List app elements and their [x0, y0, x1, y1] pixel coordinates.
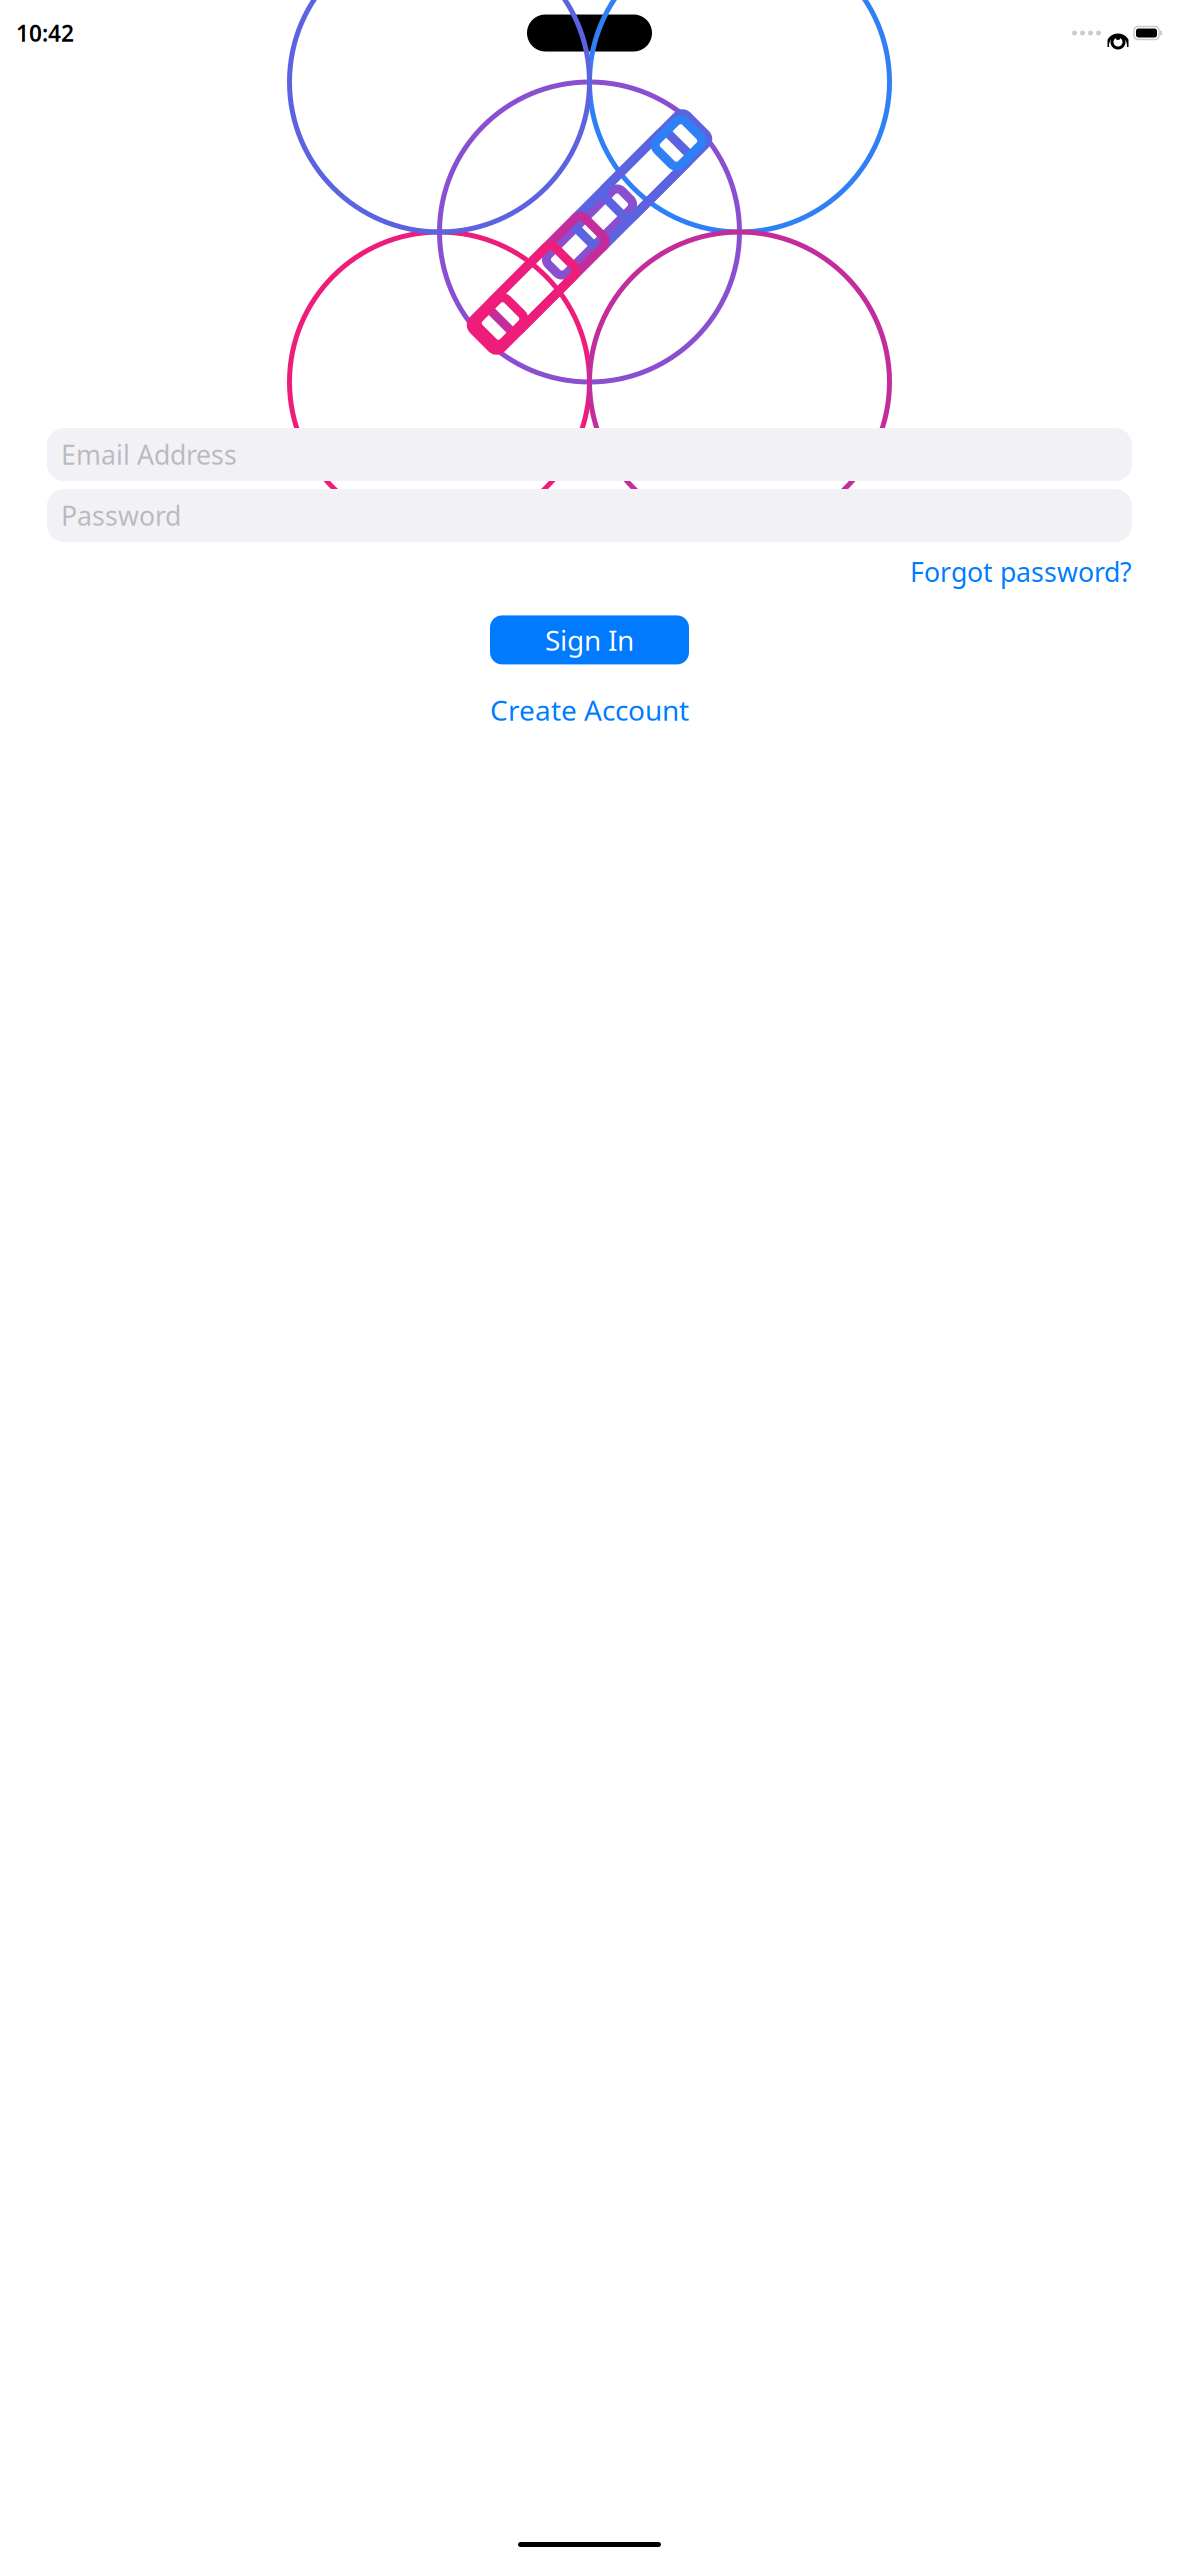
staticText: Email Address — [61, 437, 237, 472]
button[interactable]: Sign In — [490, 615, 689, 664]
button[interactable]: Create Account — [490, 691, 689, 729]
staticText: 10:42 — [16, 18, 74, 48]
staticText: Create Account — [490, 691, 689, 729]
staticText: Forgot password? — [910, 554, 1132, 589]
button[interactable]: Email Address — [47, 428, 1132, 481]
button[interactable]: Password — [47, 489, 1132, 542]
button[interactable]: Forgot password? — [910, 554, 1132, 589]
staticText: Password — [61, 498, 181, 533]
staticText: Sign In — [545, 621, 634, 658]
